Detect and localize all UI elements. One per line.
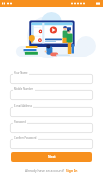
button[interactable]: Mobile Number bbox=[10, 90, 93, 100]
button[interactable]: Confirm Password bbox=[10, 139, 93, 149]
button[interactable]: Sign In bbox=[66, 168, 78, 172]
button[interactable]: Your Name bbox=[10, 74, 93, 84]
button[interactable]: Next bbox=[11, 152, 92, 162]
staticText: Mobile Number bbox=[14, 87, 34, 91]
staticText: Confirm Password bbox=[14, 136, 37, 140]
staticText: Sign In bbox=[66, 168, 78, 172]
staticText: Already have an account? bbox=[25, 168, 66, 172]
staticText: Password bbox=[14, 120, 26, 124]
staticText: Next bbox=[48, 155, 56, 159]
staticText: Your Name bbox=[14, 71, 28, 75]
staticText: E-mail Address bbox=[14, 104, 32, 108]
button[interactable]: Password bbox=[10, 123, 93, 133]
button[interactable]: E-mail Address bbox=[10, 107, 93, 117]
